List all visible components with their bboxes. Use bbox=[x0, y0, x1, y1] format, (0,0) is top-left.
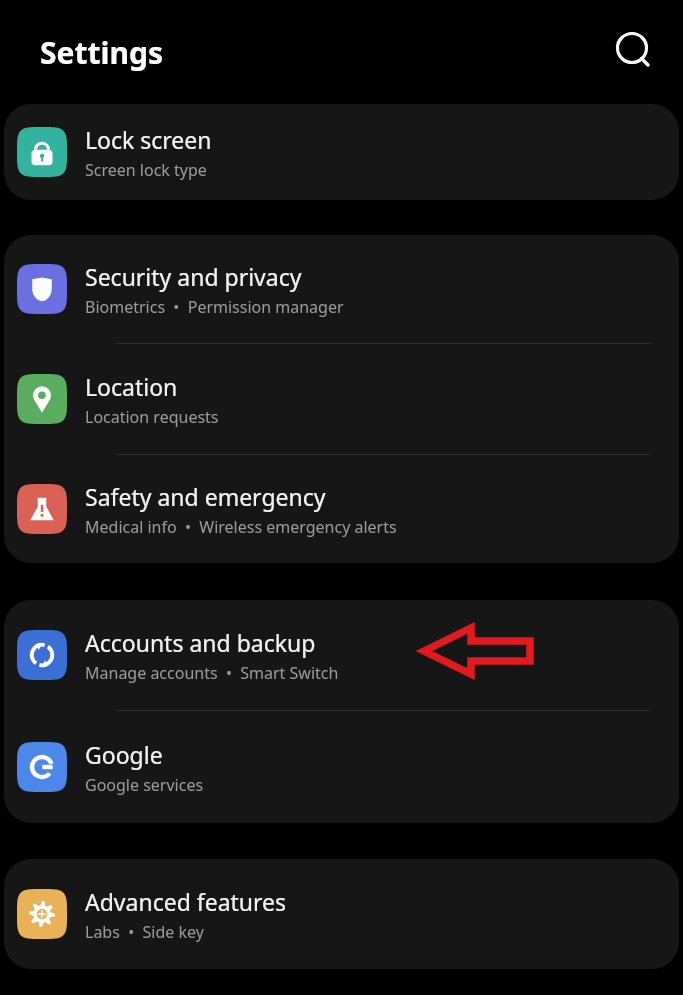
staticText: Screen lock type bbox=[85, 159, 207, 181]
staticText: Lock screen bbox=[85, 124, 212, 155]
staticText: Biometrics • Permission manager bbox=[85, 296, 344, 318]
staticText: Safety and emergency bbox=[85, 481, 326, 512]
staticText: Advanced features bbox=[85, 886, 287, 917]
staticText: Accounts and backup bbox=[85, 627, 316, 658]
button[interactable]: Safety and emergency bbox=[4, 455, 679, 563]
staticText: Labs • Side key bbox=[85, 921, 204, 943]
button[interactable]: Advanced features bbox=[4, 859, 679, 969]
button[interactable]: Location bbox=[4, 344, 679, 454]
staticText: Google services bbox=[85, 774, 204, 796]
button[interactable]: Accounts and backup bbox=[4, 600, 679, 710]
button[interactable]: Google bbox=[4, 711, 679, 823]
staticText: Security and privacy bbox=[85, 261, 302, 292]
staticText: Location bbox=[85, 371, 178, 402]
button[interactable]: Search bbox=[604, 22, 664, 82]
staticText: Settings bbox=[40, 32, 163, 73]
staticText: Location requests bbox=[85, 406, 219, 428]
staticText: Manage accounts • Smart Switch bbox=[85, 662, 339, 684]
staticText: Medical info • Wireless emergency alerts bbox=[85, 516, 397, 538]
button[interactable]: Lock screen bbox=[4, 104, 679, 200]
staticText: Google bbox=[85, 739, 163, 770]
button[interactable]: Security and privacy bbox=[4, 235, 679, 343]
